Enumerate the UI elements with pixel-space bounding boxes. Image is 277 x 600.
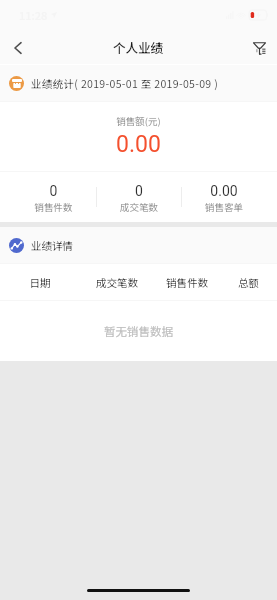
staticText: 销售件数: [154, 275, 220, 290]
staticText: 销售客单: [182, 200, 266, 214]
staticText: 暂无销售数据: [104, 323, 173, 340]
staticText: 0: [11, 183, 96, 199]
button[interactable]: 0: [97, 172, 181, 222]
staticText: 销售额(元): [0, 114, 277, 128]
staticText: 业绩详情: [31, 238, 73, 253]
staticText: 0.00: [0, 131, 277, 158]
staticText: 成交笔数: [97, 200, 181, 214]
button[interactable]: Back: [0, 30, 36, 64]
staticText: 个人业绩: [113, 38, 164, 56]
button[interactable]: 0.00: [182, 172, 266, 222]
staticText: 成交笔数: [80, 275, 154, 290]
button[interactable]: 0: [11, 172, 96, 222]
staticText: 日期: [0, 275, 80, 290]
staticText: 总额: [220, 275, 277, 290]
staticText: 业绩统计( 2019-05-01 至 2019-05-09 ): [31, 76, 219, 91]
staticText: 0.00: [182, 183, 266, 199]
staticText: 0: [97, 183, 181, 199]
staticText: 销售件数: [11, 200, 96, 214]
button[interactable]: Filter: [241, 30, 277, 64]
